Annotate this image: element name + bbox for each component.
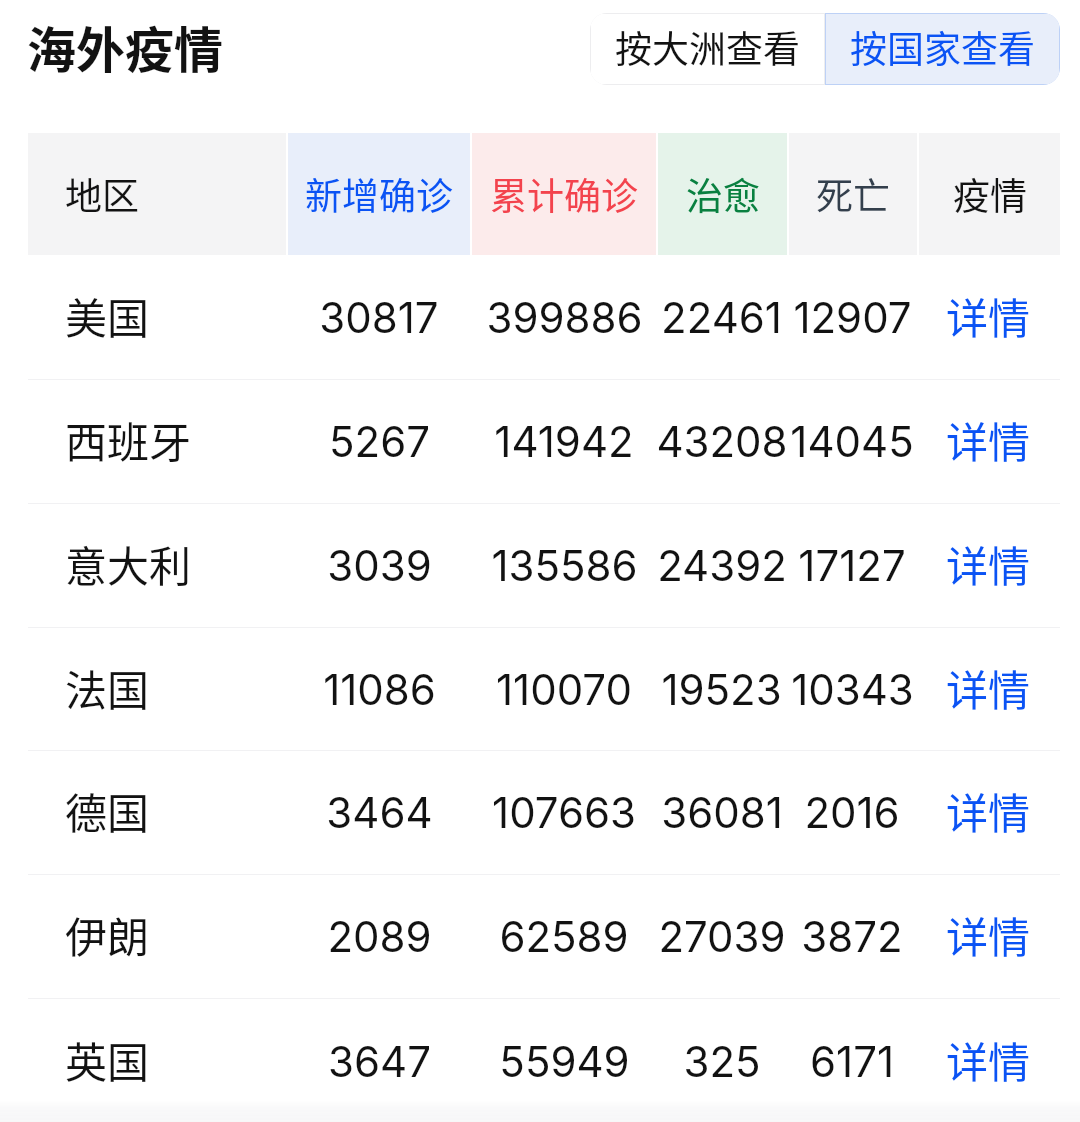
staticText: 地区 [65,167,139,221]
button[interactable]: 德国 [28,751,1060,874]
button[interactable]: 详情 [919,875,1060,998]
staticText: 治愈 [686,167,760,221]
staticText: 法国 [65,657,150,718]
staticText: 19523 [661,664,782,715]
button[interactable]: 美国 [28,255,1060,379]
staticText: 24392 [657,540,787,591]
staticText: 3464 [326,787,433,838]
button[interactable]: 伊朗 [28,875,1060,998]
staticText: 德国 [65,780,150,841]
button[interactable]: 意大利 [28,504,1060,627]
button[interactable]: 英国 [28,999,1060,1122]
staticText: 死亡 [816,167,890,221]
staticText: 325 [683,1036,761,1087]
staticText: 详情 [946,780,1031,841]
staticText: 详情 [946,657,1031,718]
staticText: 5267 [329,416,430,467]
staticText: 美国 [65,285,150,346]
staticText: 疫情 [953,167,1027,221]
staticText: 2089 [327,911,432,962]
staticText: 3039 [327,540,432,591]
staticText: 11086 [323,664,436,715]
staticText: 伊朗 [65,904,150,965]
button[interactable]: 详情 [919,751,1060,874]
staticText: 西班牙 [65,409,192,470]
staticText: 135586 [491,540,638,591]
staticText: 2016 [804,787,900,838]
button[interactable]: 按大洲查看 [591,14,824,84]
button[interactable]: 详情 [919,255,1060,379]
staticText: 海外疫情 [27,11,224,82]
staticText: 详情 [946,533,1031,594]
staticText: 详情 [946,285,1031,346]
staticText: 17127 [798,540,906,591]
button[interactable]: 详情 [919,628,1060,750]
staticText: 英国 [65,1029,150,1090]
staticText: 110070 [496,664,632,715]
button[interactable]: 详情 [919,999,1060,1122]
button[interactable]: 法国 [28,628,1060,750]
staticText: 12907 [793,292,912,343]
button[interactable]: 详情 [919,380,1060,503]
staticText: 6171 [810,1036,894,1087]
button[interactable]: 按国家查看 [826,14,1059,84]
staticText: 意大利 [65,533,192,594]
staticText: 按国家查看 [850,20,1035,74]
staticText: 3872 [801,911,903,962]
staticText: 36081 [661,787,783,838]
staticText: 按大洲查看 [615,20,800,74]
staticText: 10343 [791,664,914,715]
button[interactable]: 详情 [919,504,1060,627]
staticText: 62589 [499,911,629,962]
staticText: 详情 [946,904,1031,965]
staticText: 399886 [486,292,643,343]
staticText: 详情 [946,1029,1031,1090]
button[interactable]: 西班牙 [28,380,1060,503]
staticText: 27039 [658,911,786,962]
staticText: 55949 [499,1036,630,1087]
staticText: 14045 [790,416,914,467]
staticText: 详情 [946,409,1031,470]
staticText: 新增确诊 [305,167,453,221]
staticText: 3647 [328,1036,431,1087]
staticText: 累计确诊 [490,167,638,221]
staticText: 22461 [661,292,782,343]
staticText: 107663 [492,787,636,838]
staticText: 141942 [494,416,634,467]
staticText: 30817 [319,292,439,343]
staticText: 43208 [656,416,788,467]
